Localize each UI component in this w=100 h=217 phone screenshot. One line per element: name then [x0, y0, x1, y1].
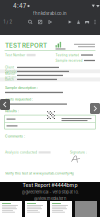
button[interactable]: Share page 1 — [0, 201, 22, 217]
button[interactable]: Share page 3 — [50, 201, 72, 217]
staticText: Test Number — [5, 53, 25, 57]
staticText: Tests requested : — [5, 97, 33, 101]
button[interactable]: More options — [93, 20, 96, 24]
staticText: Comments : — [5, 134, 25, 138]
button[interactable]: Print — [85, 20, 89, 24]
staticText: Results : — [5, 109, 19, 113]
button[interactable]: Search — [28, 20, 32, 24]
staticText: @gvlechemical - verb stop at 10. — [21, 190, 78, 194]
staticText: Sample — [5, 69, 17, 73]
staticText: Analysis conducted — [5, 150, 37, 154]
button[interactable]: Present — [48, 20, 52, 24]
staticText: fhnkdsrabi.co.in — [33, 11, 67, 16]
staticText: Test Report #4444bmp — [22, 182, 77, 188]
button[interactable]: Share page 2 — [25, 201, 47, 217]
button[interactable]: 1 / 2 — [3, 19, 12, 25]
button[interactable]: Share — [68, 20, 72, 24]
staticText: Batch — [5, 77, 14, 81]
staticText: Verify this test at www.yourlab.co/verif… — [5, 171, 74, 175]
button[interactable]: Next page — [90, 103, 100, 114]
button[interactable]: Download — [76, 20, 81, 24]
button[interactable]: Previous page — [0, 99, 10, 110]
staticText: 4:47 — [13, 3, 26, 9]
staticText: Sample description : — [5, 85, 38, 90]
staticText: Sample received — [55, 59, 82, 62]
staticText: @view.media.tern — [34, 196, 66, 201]
staticText: TEST REPORT — [5, 42, 47, 49]
staticText: Manufacturer — [5, 72, 16, 79]
button[interactable]: Annotate — [38, 20, 42, 24]
staticText: Client — [5, 65, 14, 69]
staticText: Testing started — [55, 53, 79, 57]
staticText: Signature : — [70, 150, 87, 154]
staticText: 1 / 2 — [3, 19, 12, 25]
